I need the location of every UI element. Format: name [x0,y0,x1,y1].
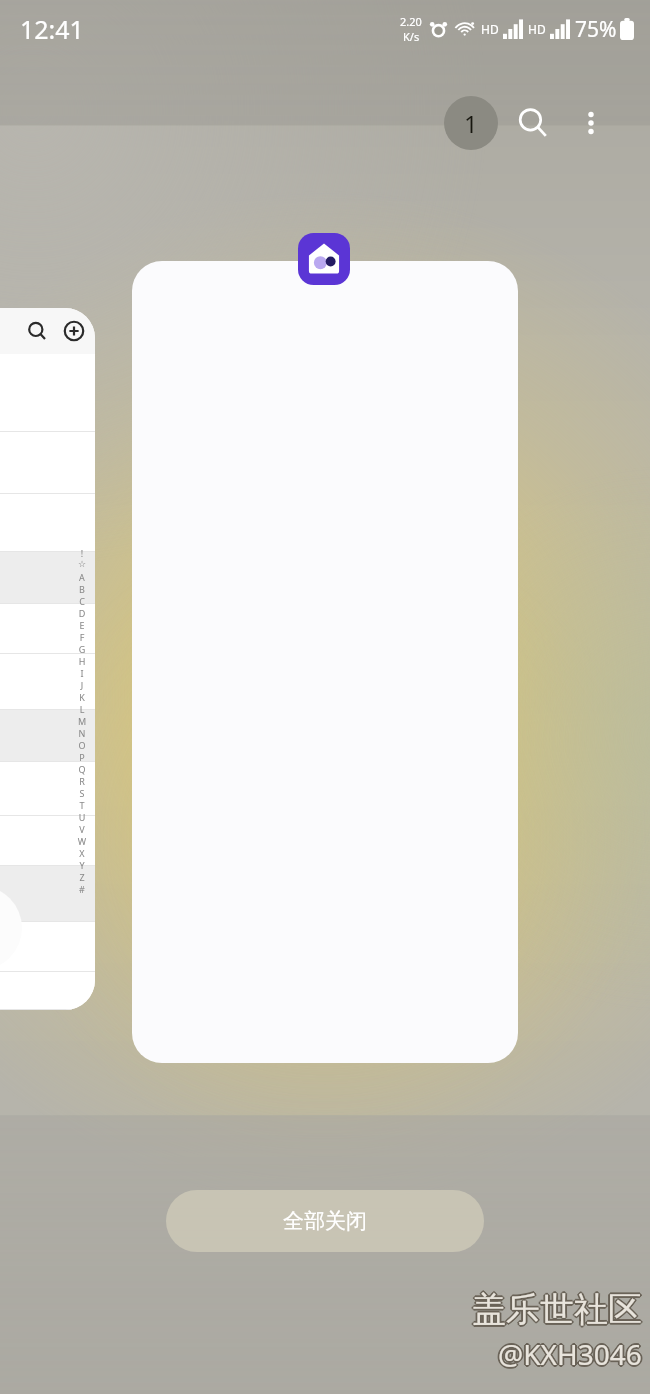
staticText: M [76,715,88,727]
staticText: C [76,595,88,607]
staticText: ! [76,547,88,559]
staticText: Q [76,763,88,775]
staticText: 1 [464,107,478,140]
staticText: A [76,571,88,583]
staticText: @KXH3046 [498,1337,642,1375]
staticText: @KXH3046 [499,1334,643,1372]
button[interactable]: App icon [298,233,350,285]
staticText: U [76,811,88,823]
staticText: 盖乐世社区 [474,1288,644,1331]
staticText: 75% [575,15,617,44]
staticText: # [76,883,88,895]
staticText: I [76,667,88,679]
staticText: W [76,835,88,847]
staticText: 盖乐世社区 [472,1288,642,1331]
button[interactable]: 1 [444,96,498,150]
staticText: F [76,631,88,643]
staticText: @KXH3046 [499,1336,643,1374]
staticText: 盖乐世社区 [473,1287,643,1330]
button[interactable]: 全部关闭 [166,1190,484,1252]
staticText: ☆ [76,559,88,571]
staticText: @KXH3046 [500,1335,644,1373]
staticText: T [76,799,88,811]
staticText: 盖乐世社区 [470,1288,640,1331]
staticText: @KXH3046 [497,1336,641,1374]
staticText: O [76,739,88,751]
staticText: V [76,823,88,835]
staticText: 盖乐世社区 [471,1289,641,1332]
staticText: X [76,847,88,859]
staticText: @KXH3046 [496,1335,640,1373]
staticText: 盖乐世社区 [472,1286,642,1329]
button[interactable]: Locked [0,886,22,970]
staticText: 全部关闭 [283,1208,367,1234]
staticText: N [76,727,88,739]
staticText: 盖乐世社区 [471,1287,641,1330]
staticText: 2.20 [400,14,422,29]
staticText: B [76,583,88,595]
button[interactable]: More options [566,98,616,148]
button[interactable] [132,261,518,1063]
button[interactable]: 告） [0,308,95,1010]
staticText: @KXH3046 [498,1335,642,1373]
staticText: Z [76,871,88,883]
staticText: 盖乐世社区 [473,1289,643,1332]
staticText: @KXH3046 [497,1334,641,1372]
staticText: E [76,619,88,631]
staticText: P [76,751,88,763]
staticText: L [76,703,88,715]
staticText: K [76,691,88,703]
staticText: D [76,607,88,619]
staticText: HD [481,21,499,37]
staticText: @KXH3046 [498,1333,642,1371]
staticText: S [76,787,88,799]
staticText: J [76,679,88,691]
staticText: 盖乐世社区 [472,1290,642,1333]
staticText: 12:41 [20,12,84,46]
staticText: G [76,643,88,655]
staticText: R [76,775,88,787]
staticText: H [76,655,88,667]
staticText: Y [76,859,88,871]
staticText: K/s [403,29,420,44]
staticText: HD [528,21,546,37]
button[interactable]: Search [506,96,560,150]
